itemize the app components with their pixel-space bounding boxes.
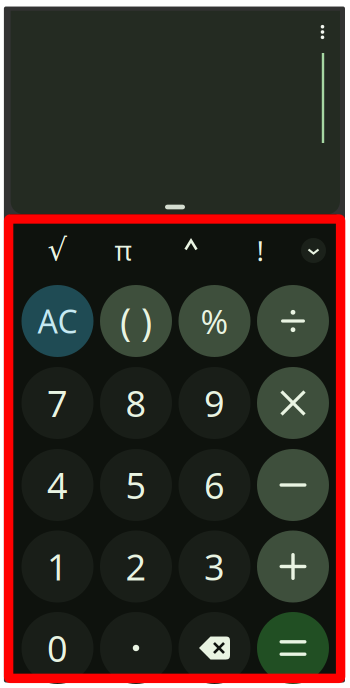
staticText: 2 bbox=[125, 543, 146, 590]
button[interactable]: 4 bbox=[21, 449, 93, 521]
staticText: √ bbox=[47, 233, 67, 267]
staticText: 8 bbox=[125, 379, 146, 427]
staticText: % bbox=[200, 299, 228, 343]
button[interactable]: 1 bbox=[21, 530, 93, 602]
button[interactable]: ( ) bbox=[100, 285, 172, 357]
staticText: 5 bbox=[125, 461, 146, 509]
button[interactable] bbox=[257, 530, 329, 602]
staticText: ( ) bbox=[120, 296, 152, 346]
button[interactable] bbox=[257, 449, 329, 521]
button[interactable]: AC bbox=[21, 285, 93, 357]
staticText: 3 bbox=[204, 543, 225, 590]
staticText: 7 bbox=[47, 379, 68, 427]
button[interactable] bbox=[257, 612, 329, 684]
staticText: ! bbox=[256, 232, 264, 269]
button[interactable]: π bbox=[100, 227, 146, 273]
button[interactable]: 7 bbox=[21, 367, 93, 439]
button[interactable]: 3 bbox=[178, 530, 250, 602]
button[interactable] bbox=[178, 612, 250, 684]
button[interactable]: 0 bbox=[21, 612, 93, 684]
staticText: 4 bbox=[47, 461, 68, 509]
staticText: π bbox=[114, 233, 131, 268]
button[interactable] bbox=[257, 367, 329, 439]
button[interactable]: 8 bbox=[100, 367, 172, 439]
button[interactable]: 5 bbox=[100, 449, 172, 521]
button[interactable] bbox=[257, 285, 329, 357]
button[interactable]: More functions bbox=[296, 233, 330, 267]
staticText: 0 bbox=[47, 624, 68, 672]
button[interactable]: 6 bbox=[178, 449, 250, 521]
button[interactable]: More options bbox=[307, 17, 337, 47]
staticText: 9 bbox=[204, 379, 225, 427]
button[interactable]: Power bbox=[169, 223, 213, 267]
staticText: 6 bbox=[204, 461, 225, 509]
button[interactable]: % bbox=[178, 285, 250, 357]
button[interactable]: 2 bbox=[100, 530, 172, 602]
staticText: AC bbox=[37, 300, 77, 342]
button[interactable]: √ bbox=[34, 227, 80, 273]
button[interactable] bbox=[100, 612, 172, 684]
button[interactable]: ! bbox=[237, 227, 283, 273]
staticText: 1 bbox=[47, 543, 68, 590]
button[interactable]: 9 bbox=[178, 367, 250, 439]
